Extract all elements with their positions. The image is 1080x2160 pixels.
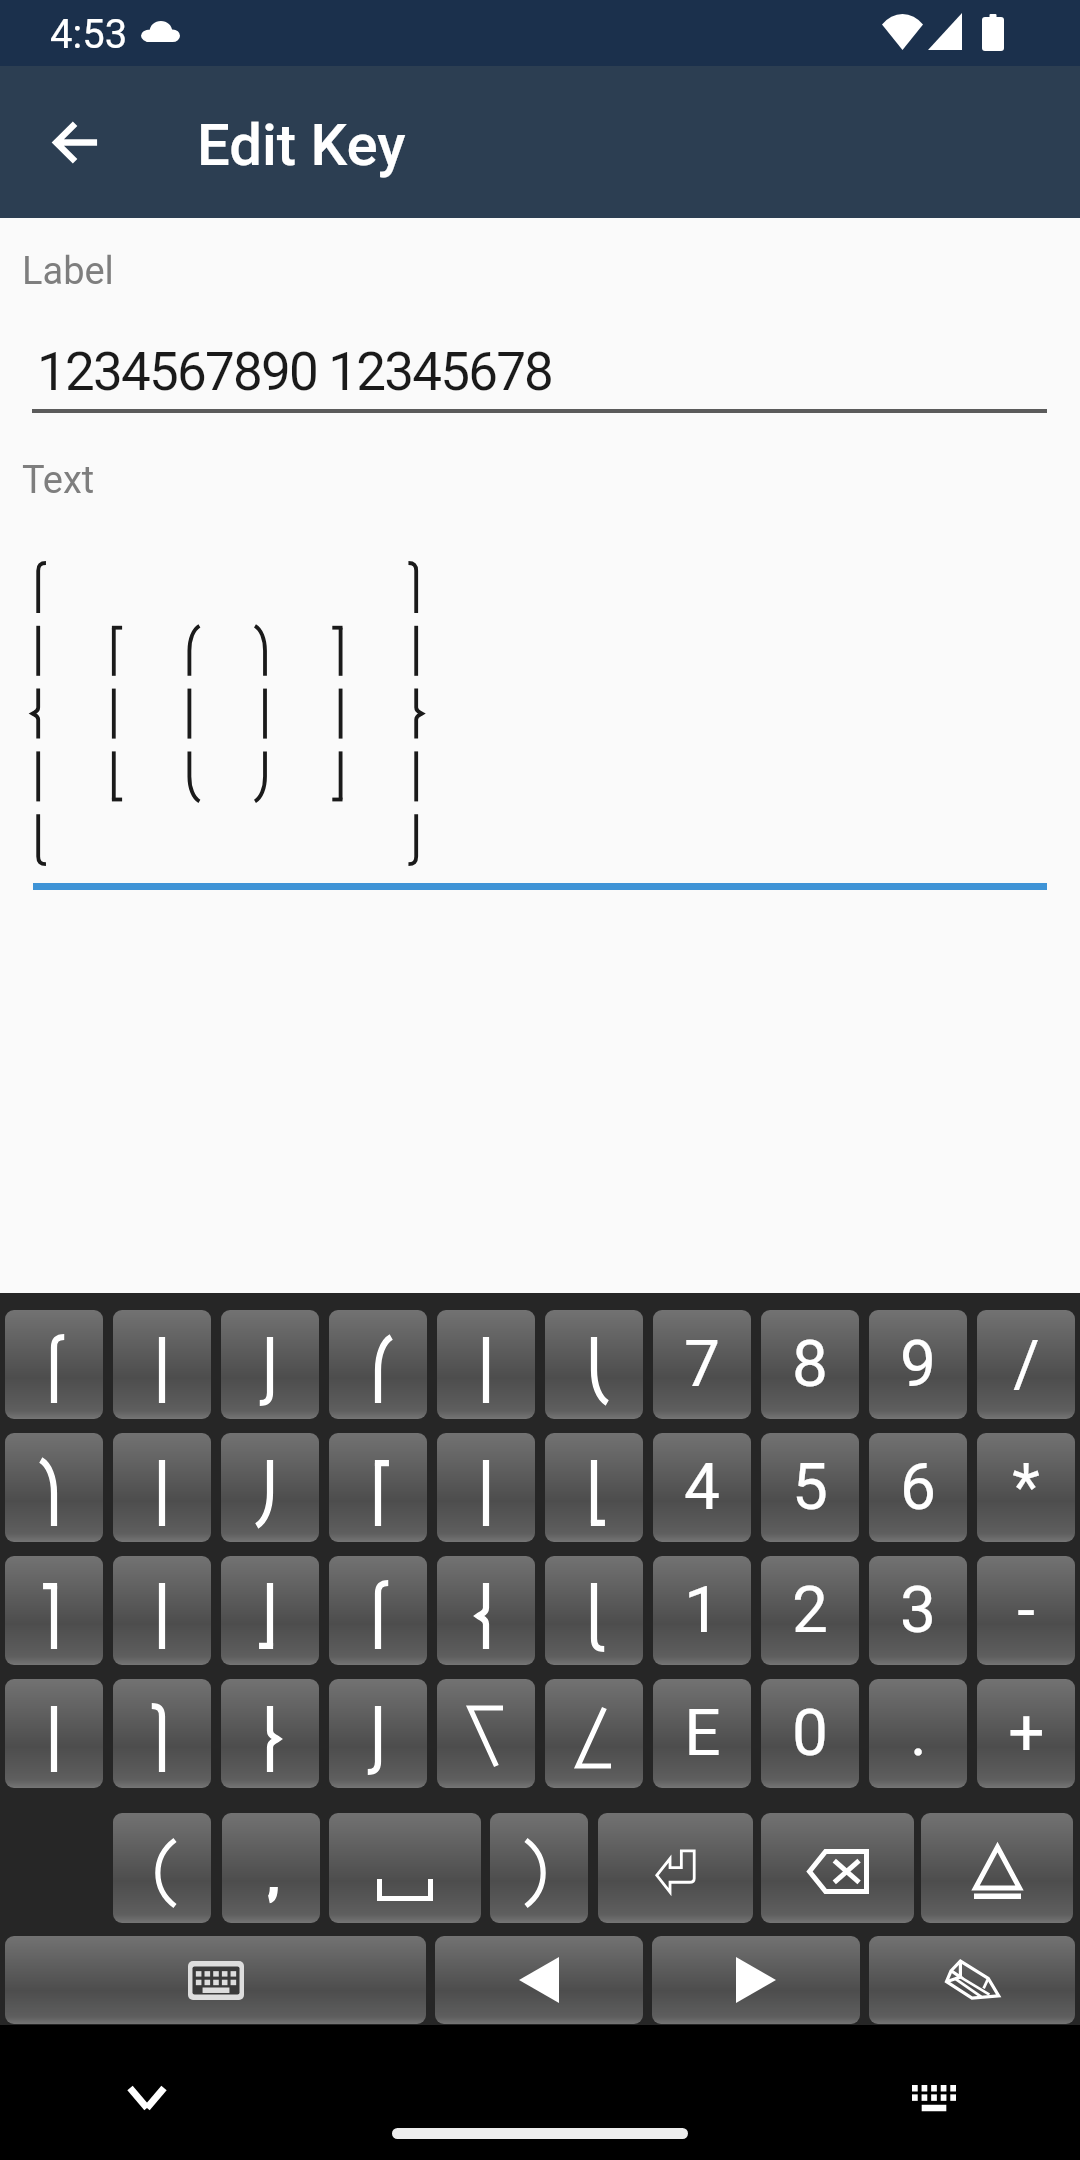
button[interactable]: 3 xyxy=(869,1556,967,1665)
staticText: Edit Key xyxy=(197,111,406,179)
button[interactable]: Key xyxy=(221,1556,319,1665)
button[interactable]: Move left xyxy=(435,1936,643,2024)
staticText: 3 xyxy=(900,1573,936,1648)
staticText: Text xyxy=(22,458,95,503)
staticText: + xyxy=(1008,1696,1045,1771)
button[interactable]: Key xyxy=(113,1310,211,1419)
staticText: 0 xyxy=(792,1696,828,1771)
staticText: . xyxy=(910,1696,927,1771)
button[interactable]: Enter xyxy=(598,1813,753,1923)
button[interactable]: Key xyxy=(5,1556,103,1665)
button[interactable]: Key xyxy=(545,1556,643,1665)
button[interactable]: Key xyxy=(490,1813,588,1923)
button[interactable]: Key xyxy=(113,1433,211,1542)
staticText: Label xyxy=(22,249,114,294)
button[interactable]: * xyxy=(977,1433,1075,1542)
button[interactable]: Key xyxy=(545,1310,643,1419)
staticText: 4 xyxy=(684,1450,720,1525)
button[interactable]: 0 xyxy=(761,1679,859,1788)
button[interactable]: Key xyxy=(545,1433,643,1542)
button[interactable]: Key xyxy=(329,1679,427,1788)
button[interactable]: 1 xyxy=(653,1556,751,1665)
button[interactable]: Key xyxy=(329,1310,427,1419)
staticText: * xyxy=(1012,1450,1040,1525)
button[interactable]: 6 xyxy=(869,1433,967,1542)
staticText: 5 xyxy=(792,1450,828,1525)
button[interactable]: E xyxy=(653,1679,751,1788)
staticText: 9 xyxy=(900,1327,936,1402)
button[interactable]: Hide keyboard xyxy=(97,2048,197,2148)
button[interactable]: Key xyxy=(5,1679,103,1788)
button[interactable]: Backspace xyxy=(761,1813,914,1923)
button[interactable]: Angle xyxy=(545,1679,643,1788)
button[interactable]: . xyxy=(869,1679,967,1788)
staticText: - xyxy=(1017,1573,1035,1648)
button[interactable]: Angle xyxy=(437,1679,535,1788)
button[interactable]: Key xyxy=(113,1556,211,1665)
button[interactable]: Switch keyboard xyxy=(5,1936,426,2024)
button[interactable]: Key xyxy=(113,1679,211,1788)
button[interactable]: Space xyxy=(329,1813,481,1923)
button[interactable]: 8 xyxy=(761,1310,859,1419)
button[interactable]: Key xyxy=(5,1310,103,1419)
button[interactable]: + xyxy=(977,1679,1075,1788)
button[interactable]: Shift xyxy=(921,1813,1073,1923)
staticText: 7 xyxy=(684,1327,720,1402)
button[interactable]: Key xyxy=(329,1433,427,1542)
button[interactable]: Back xyxy=(21,87,131,197)
button[interactable]: Key xyxy=(113,1813,211,1923)
staticText: 1 xyxy=(684,1573,720,1648)
staticText: 4:53 xyxy=(50,11,128,58)
button[interactable]: - xyxy=(977,1556,1075,1665)
button[interactable]: 4 xyxy=(653,1433,751,1542)
button[interactable]: 9 xyxy=(869,1310,967,1419)
staticText: 6 xyxy=(900,1450,936,1525)
button[interactable]: Key xyxy=(329,1556,427,1665)
button[interactable]: Move right xyxy=(652,1936,860,2024)
button[interactable]: Key xyxy=(221,1679,319,1788)
staticText: 1234567890 12345678 xyxy=(37,341,553,403)
button[interactable]: 2 xyxy=(761,1556,859,1665)
button[interactable]: Key xyxy=(437,1556,535,1665)
button[interactable]: Key xyxy=(5,1433,103,1542)
staticText: / xyxy=(1013,1327,1040,1402)
button[interactable]: Key xyxy=(437,1310,535,1419)
button[interactable]: Key xyxy=(437,1433,535,1542)
button[interactable]: Key xyxy=(222,1813,320,1923)
staticText: 2 xyxy=(792,1573,828,1648)
staticText: E xyxy=(684,1696,721,1771)
button[interactable]: 5 xyxy=(761,1433,859,1542)
button[interactable]: Key xyxy=(221,1433,319,1542)
staticText: 8 xyxy=(792,1327,828,1402)
button[interactable]: 7 xyxy=(653,1310,751,1419)
button[interactable]: / xyxy=(977,1310,1075,1419)
button[interactable]: Change keyboard xyxy=(884,2048,984,2148)
button[interactable]: Key xyxy=(221,1310,319,1419)
button[interactable]: Handwriting xyxy=(869,1936,1075,2024)
